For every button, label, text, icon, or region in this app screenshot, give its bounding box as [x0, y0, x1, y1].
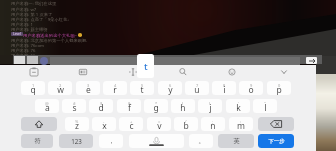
staticText: $: [100, 101, 103, 106]
button[interactable]: Send: [306, 57, 317, 64]
button[interactable]: Move cursor: [121, 65, 145, 79]
button[interactable]: Cards: [71, 65, 95, 79]
staticText: 7: [196, 83, 199, 88]
button[interactable]: (: [171, 99, 195, 113]
button[interactable]: 0: [267, 81, 291, 95]
button[interactable]: Emoji: [40, 57, 48, 65]
button[interactable]: $: [89, 99, 113, 113]
staticText: ;: [212, 119, 214, 124]
button[interactable]: 7: [185, 81, 209, 95]
button[interactable]: 符: [21, 134, 53, 148]
staticText: Level: [13, 32, 21, 36]
staticText: ': [238, 101, 239, 106]
button[interactable]: &: [117, 99, 141, 113]
button[interactable]: *: [144, 99, 168, 113]
staticText: s: [72, 102, 77, 113]
button[interactable]: 5: [130, 81, 154, 95]
button[interactable]: -: [92, 117, 116, 131]
staticText: #: [73, 101, 76, 106]
button[interactable]: Emoji: [220, 65, 244, 79]
button[interactable]: 下一步: [258, 134, 294, 148]
button[interactable]: Period: [189, 134, 213, 148]
staticText: m: [237, 120, 245, 131]
button[interactable]: ": [253, 99, 277, 113]
staticText: k: [236, 102, 241, 113]
button[interactable]: %: [65, 117, 89, 131]
staticText: 用户名称一: 我们在这里: [11, 0, 57, 6]
staticText: 9: [250, 83, 253, 88]
button[interactable]: @: [35, 99, 59, 113]
button[interactable]: 123: [59, 134, 93, 148]
staticText: v: [157, 120, 162, 131]
staticText: g: [153, 102, 159, 113]
button[interactable]: 3: [76, 81, 100, 95]
staticText: 用户名称: 1: [11, 21, 33, 27]
staticText: ，: [108, 137, 115, 145]
staticText: :: [240, 119, 242, 124]
staticText: u: [194, 84, 200, 95]
button[interactable]: =: [147, 117, 171, 131]
button[interactable]: Search: [171, 65, 195, 79]
button[interactable]: Clipboard: [22, 65, 46, 79]
staticText: %: [75, 119, 79, 124]
staticText: b: [183, 120, 189, 131]
staticText: 用户名称: 第 1 次来了: [11, 11, 53, 17]
staticText: =: [158, 119, 161, 124]
button[interactable]: 8: [212, 81, 236, 95]
staticText: h: [180, 102, 186, 113]
button[interactable]: Language: [218, 134, 254, 148]
button[interactable]: Comma: [99, 134, 123, 148]
staticText: t: [144, 60, 148, 73]
staticText: 用户名称: 北京加油的第一个人都来刷吧.: [11, 37, 88, 43]
staticText: f: [128, 102, 131, 113]
staticText: y: [168, 84, 173, 95]
button[interactable]: ): [198, 99, 222, 113]
button[interactable]: ;: [201, 117, 225, 131]
staticText: @: [45, 101, 49, 106]
staticText: 符: [34, 137, 41, 145]
button[interactable]: ': [226, 99, 250, 113]
button[interactable]: #: [62, 99, 86, 113]
staticText: 用户名称: 76: [11, 47, 36, 53]
staticText: 用户名称: w7: [11, 6, 37, 12]
button[interactable]: 2: [48, 81, 72, 95]
staticText: ": [264, 101, 266, 106]
staticText: *: [155, 101, 158, 106]
staticText: 6: [169, 83, 172, 88]
staticText: n: [210, 120, 216, 131]
button[interactable]: 6: [158, 81, 182, 95]
staticText: 8: [223, 83, 226, 88]
staticText: 5: [141, 83, 144, 88]
staticText: -: [103, 119, 105, 124]
button[interactable]: 9: [239, 81, 263, 95]
staticText: 。: [198, 137, 205, 145]
staticText: 英: [233, 137, 240, 145]
staticText: j: [209, 102, 212, 113]
staticText: w: [57, 84, 64, 95]
button[interactable]: /: [174, 117, 198, 131]
staticText: +: [130, 119, 133, 124]
button[interactable]: :: [229, 117, 253, 131]
staticText: d: [98, 102, 104, 113]
button[interactable]: Space: [129, 134, 184, 148]
staticText: (: [182, 101, 184, 106]
staticText: o: [248, 84, 254, 95]
staticText: r: [113, 84, 117, 95]
staticText: z: [75, 120, 79, 131]
staticText: 下一步: [268, 138, 285, 145]
button[interactable]: [50, 57, 300, 65]
staticText: 1: [32, 83, 35, 88]
staticText: i: [223, 84, 226, 95]
staticText: p: [276, 84, 282, 95]
staticText: ): [209, 101, 211, 106]
button[interactable]: Hide keyboard: [272, 65, 296, 79]
button[interactable]: 4: [103, 81, 127, 95]
button[interactable]: Backspace: [258, 117, 294, 131]
staticText: 4: [114, 83, 117, 88]
button[interactable]: +: [119, 117, 143, 131]
button[interactable]: 1: [21, 81, 45, 95]
staticText: 用户名称: 点亮了「9朵小红花」: [11, 16, 72, 22]
button[interactable]: Shift: [21, 117, 57, 131]
